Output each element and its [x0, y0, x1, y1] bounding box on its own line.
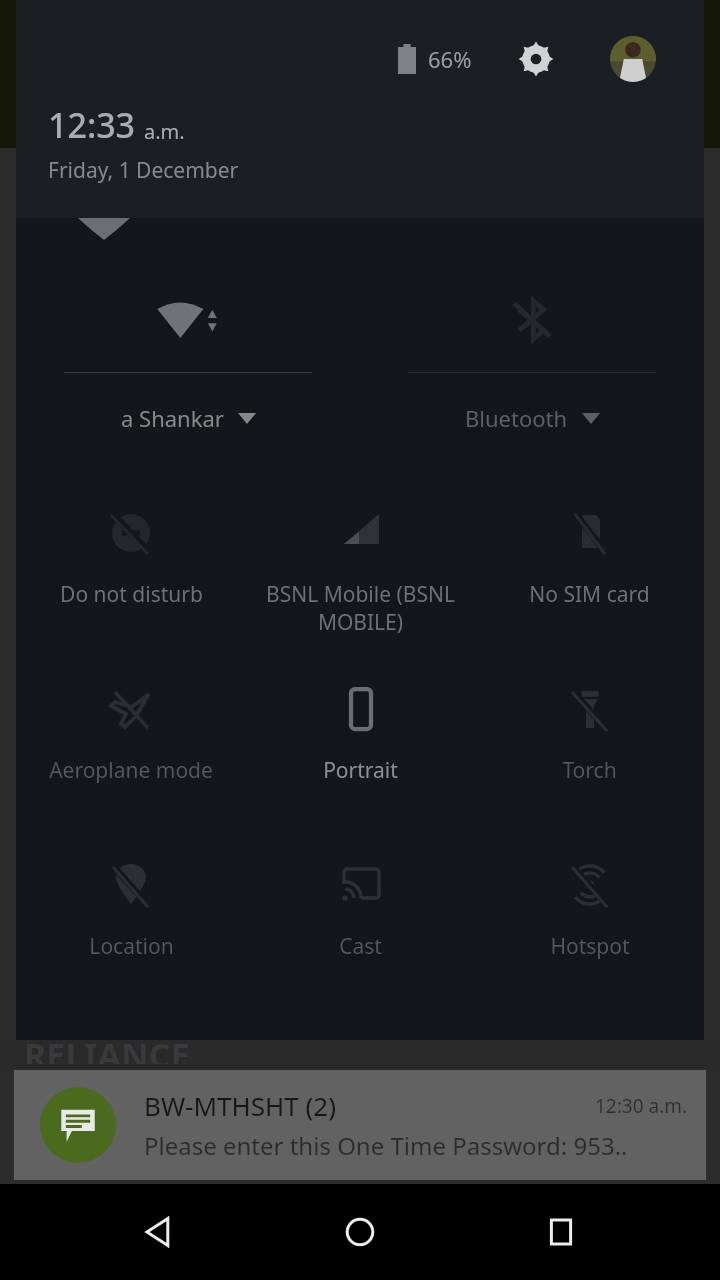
staticText: Portrait [323, 756, 398, 785]
staticText: Do not disturb [60, 580, 203, 609]
button[interactable]: Aeroplane mode [16, 664, 246, 840]
button[interactable]: No SIM card [475, 488, 704, 664]
button[interactable]: Recent apps [519, 1190, 603, 1274]
staticText: Hotspot [550, 932, 630, 961]
staticText: 12:33 [48, 102, 136, 148]
staticText: Bluetooth [465, 403, 568, 433]
button[interactable]: a Shankar [16, 278, 360, 433]
button[interactable]: Location [16, 840, 246, 1016]
button[interactable]: Bluetooth [360, 278, 704, 433]
button[interactable]: Cast [246, 840, 475, 1016]
staticText: No SIM card [529, 580, 650, 609]
button[interactable]: Hotspot [475, 840, 704, 1016]
button[interactable]: Settings [514, 37, 558, 81]
staticText: Torch [562, 756, 617, 785]
staticText: Cast [339, 932, 382, 961]
staticText: BSNL Mobile (BSNL MOBILE) [266, 580, 455, 636]
button[interactable]: BSNL Mobile (BSNL MOBILE) [246, 488, 475, 664]
staticText: BW-MTHSHT (2) [144, 1088, 595, 1123]
staticText: Location [89, 932, 174, 961]
button[interactable]: Home [318, 1190, 402, 1274]
button[interactable]: User profile [610, 36, 656, 82]
staticText: 66% [428, 44, 472, 74]
button[interactable]: BW-MTHSHT (2) [14, 1070, 706, 1180]
button[interactable]: Back [117, 1190, 201, 1274]
staticText: Friday, 1 December [48, 156, 239, 185]
button[interactable]: Portrait [246, 664, 475, 840]
button[interactable]: Do not disturb [16, 488, 246, 664]
staticText: Please enter this One Time Password: 953… [144, 1129, 628, 1162]
staticText: a Shankar [121, 403, 224, 433]
staticText: Aeroplane mode [49, 756, 213, 785]
staticText: 12:30 a.m. [595, 1093, 688, 1119]
staticText: RELIANCE [24, 1032, 190, 1064]
staticText: a.m. [144, 118, 185, 145]
button[interactable]: Torch [475, 664, 704, 840]
